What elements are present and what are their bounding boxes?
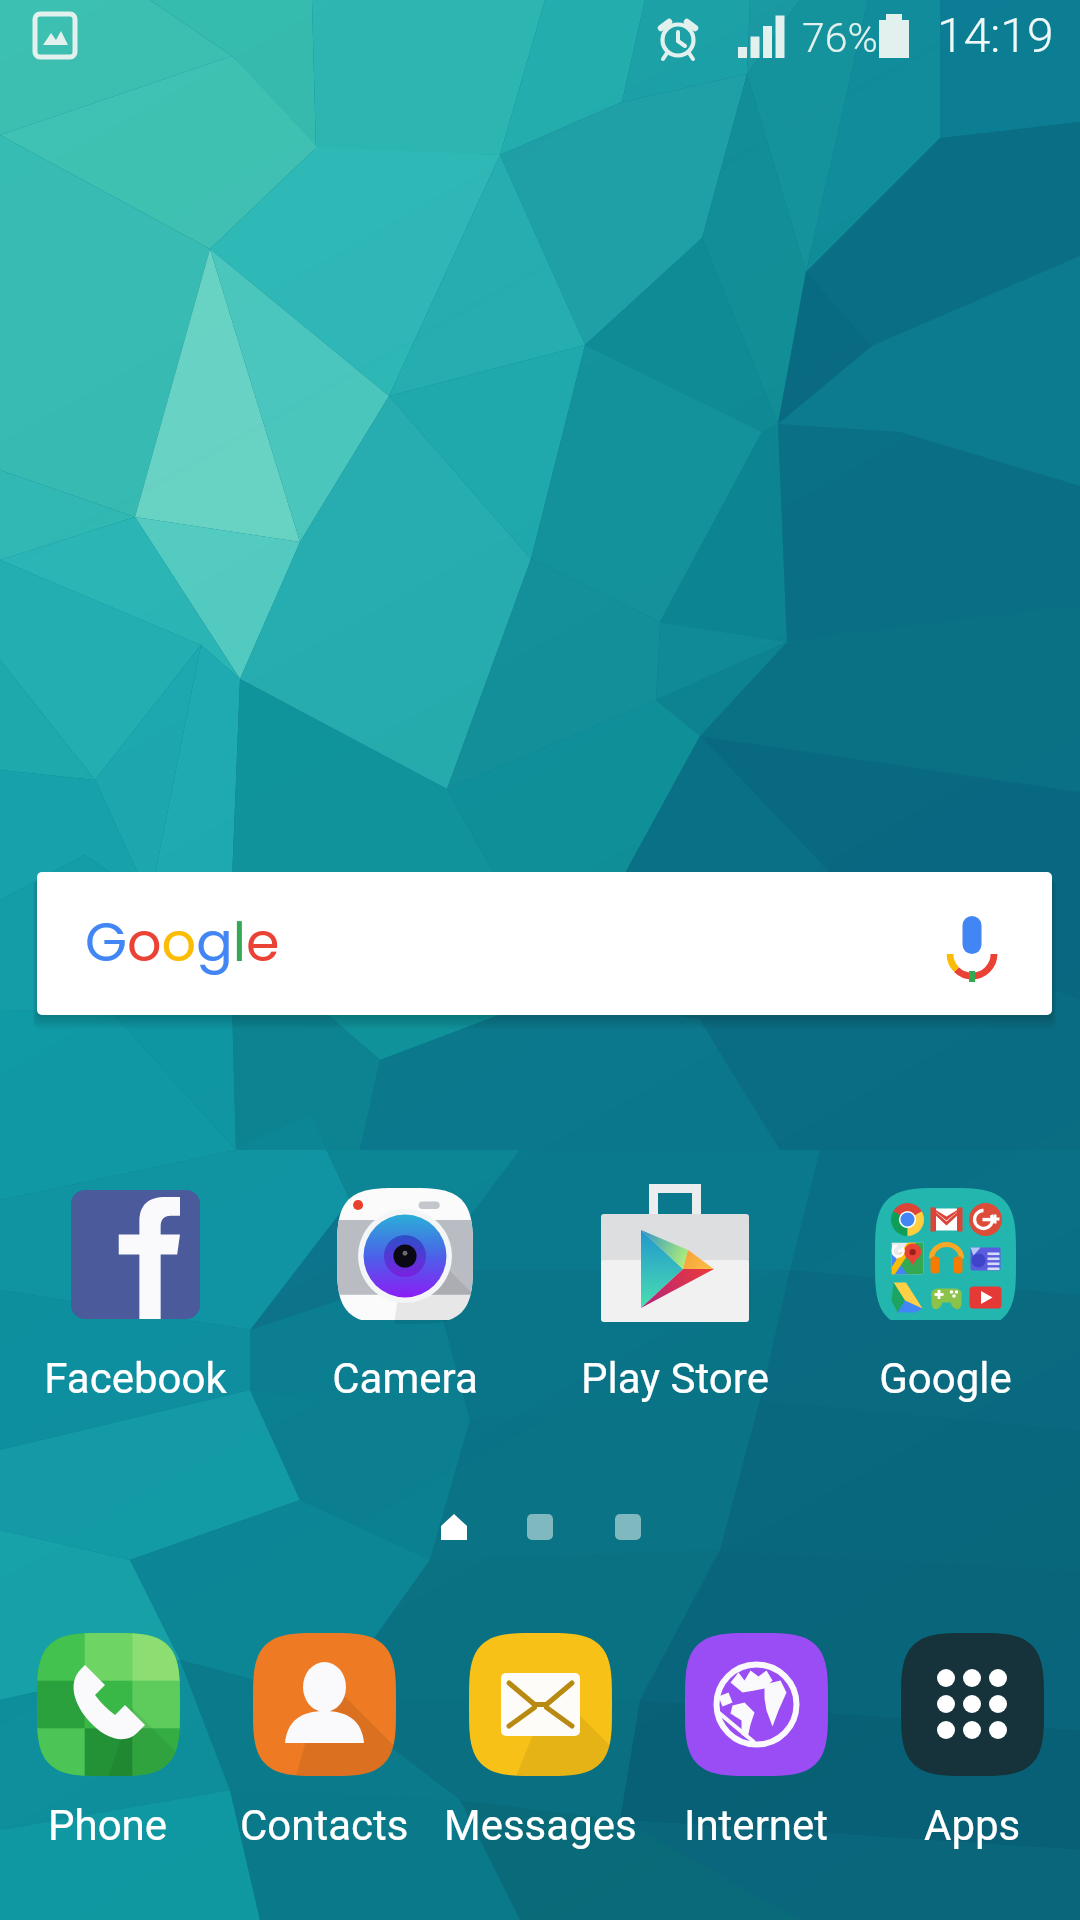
button[interactable]: Page 3	[615, 1514, 641, 1540]
staticText: Play Store	[581, 1354, 769, 1403]
button[interactable]: Internet	[648, 1633, 864, 1850]
staticText: Internet	[684, 1801, 829, 1850]
staticText: Facebook	[44, 1354, 227, 1403]
button[interactable]: Google	[810, 1188, 1080, 1403]
staticText: Google	[879, 1354, 1012, 1403]
button[interactable]: Phone	[0, 1633, 216, 1850]
staticText: Apps	[924, 1801, 1021, 1850]
staticText: 76%	[802, 14, 878, 62]
staticText: Camera	[332, 1354, 478, 1403]
button[interactable]: Messages	[432, 1633, 648, 1850]
button[interactable]: Facebook	[0, 1188, 270, 1403]
staticText: Phone	[48, 1801, 168, 1850]
button[interactable]: Google	[37, 872, 1052, 1015]
staticText: Contacts	[240, 1801, 409, 1850]
button[interactable]: Apps	[864, 1633, 1080, 1850]
button[interactable]: Home page	[439, 1512, 469, 1542]
staticText: Google	[85, 904, 280, 980]
button[interactable]: Voice search	[937, 909, 1007, 979]
button[interactable]: Page 2	[527, 1514, 553, 1540]
button[interactable]: Contacts	[216, 1633, 432, 1850]
staticText: 14:19	[937, 7, 1054, 63]
button[interactable]: Status bar	[0, 0, 1080, 78]
button[interactable]: Apps	[901, 1633, 1044, 1776]
staticText: Messages	[444, 1801, 637, 1850]
button[interactable]: Play Store	[540, 1188, 810, 1403]
button[interactable]: Camera	[270, 1188, 540, 1403]
